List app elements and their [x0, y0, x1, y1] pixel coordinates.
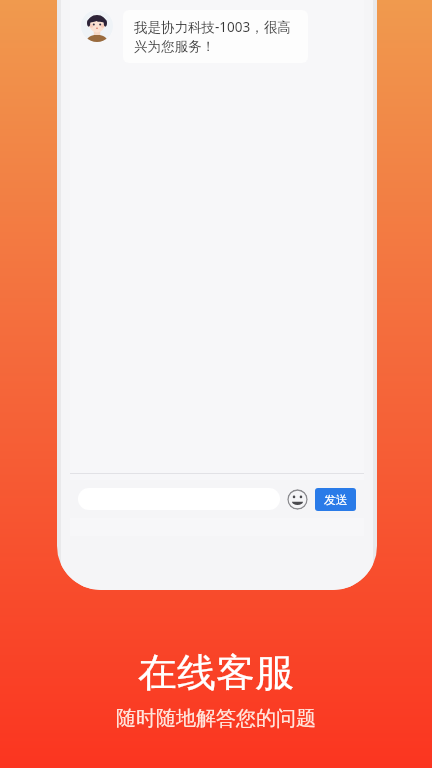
staticText: 发送: [324, 492, 348, 507]
staticText: 在线客服: [138, 648, 294, 697]
button[interactable]: 我是协力科技-1003，很高兴为您服务！: [123, 10, 308, 63]
staticText: 我是协力科技-1003，很高兴为您服务！: [134, 18, 297, 55]
button[interactable]: 发送: [315, 488, 356, 511]
button[interactable]: Emoji: [287, 489, 308, 510]
staticText: 随时随地解答您的问题: [116, 706, 316, 731]
